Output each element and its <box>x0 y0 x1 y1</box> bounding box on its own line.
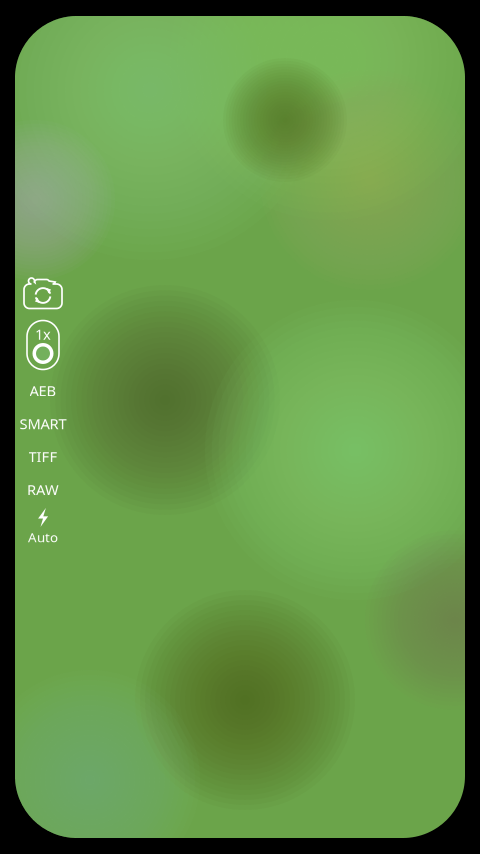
staticText: AEB <box>29 380 56 400</box>
button[interactable]: RAW <box>15 473 71 506</box>
button[interactable]: TIFF <box>15 440 71 473</box>
button[interactable]: Auto <box>15 506 71 548</box>
staticText: TIFF <box>28 446 57 466</box>
button[interactable]: AEB <box>15 374 71 407</box>
button[interactable]: SMART <box>15 407 71 440</box>
button[interactable]: Switch camera <box>15 274 71 314</box>
staticText: Auto <box>28 528 58 546</box>
staticText: 1x <box>35 324 51 344</box>
staticText: SMART <box>19 413 66 433</box>
button[interactable]: Zoom level 1x <box>15 318 71 372</box>
staticText: RAW <box>27 479 59 499</box>
